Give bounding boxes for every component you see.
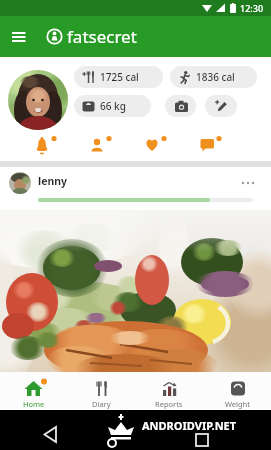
- staticText: fatsecret: [67, 25, 137, 48]
- button[interactable]: lenny: [0, 167, 271, 210]
- button[interactable]: [41, 426, 65, 446]
- staticText: Reports: [155, 399, 183, 409]
- staticText: 1836 cal: [196, 70, 235, 84]
- staticText: 66 kg: [100, 99, 126, 113]
- staticText: 1725 cal: [100, 70, 139, 84]
- button[interactable]: 1725 cal: [74, 66, 163, 88]
- button[interactable]: [198, 134, 224, 158]
- button[interactable]: [8, 25, 32, 49]
- staticText: Home: [23, 399, 45, 409]
- button[interactable]: 1836 cal: [170, 66, 257, 88]
- button[interactable]: [88, 134, 114, 158]
- button[interactable]: [0, 210, 271, 372]
- button[interactable]: Diary: [67, 372, 135, 410]
- button[interactable]: 66 kg: [74, 95, 151, 117]
- button[interactable]: [143, 134, 169, 158]
- button[interactable]: Reports: [135, 372, 203, 410]
- button[interactable]: [205, 95, 237, 117]
- staticText: ANDROIDVIP.NET: [142, 418, 237, 433]
- staticText: Weight: [225, 399, 250, 409]
- button[interactable]: [193, 433, 213, 450]
- button[interactable]: Weight: [203, 372, 271, 410]
- button[interactable]: fatsecret: [46, 25, 137, 48]
- button[interactable]: Home: [0, 372, 67, 410]
- staticText: 12:30: [240, 2, 264, 14]
- staticText: lenny: [38, 174, 68, 188]
- button[interactable]: [165, 95, 196, 117]
- button[interactable]: [33, 134, 59, 158]
- staticText: Diary: [92, 399, 111, 409]
- button[interactable]: [8, 70, 68, 130]
